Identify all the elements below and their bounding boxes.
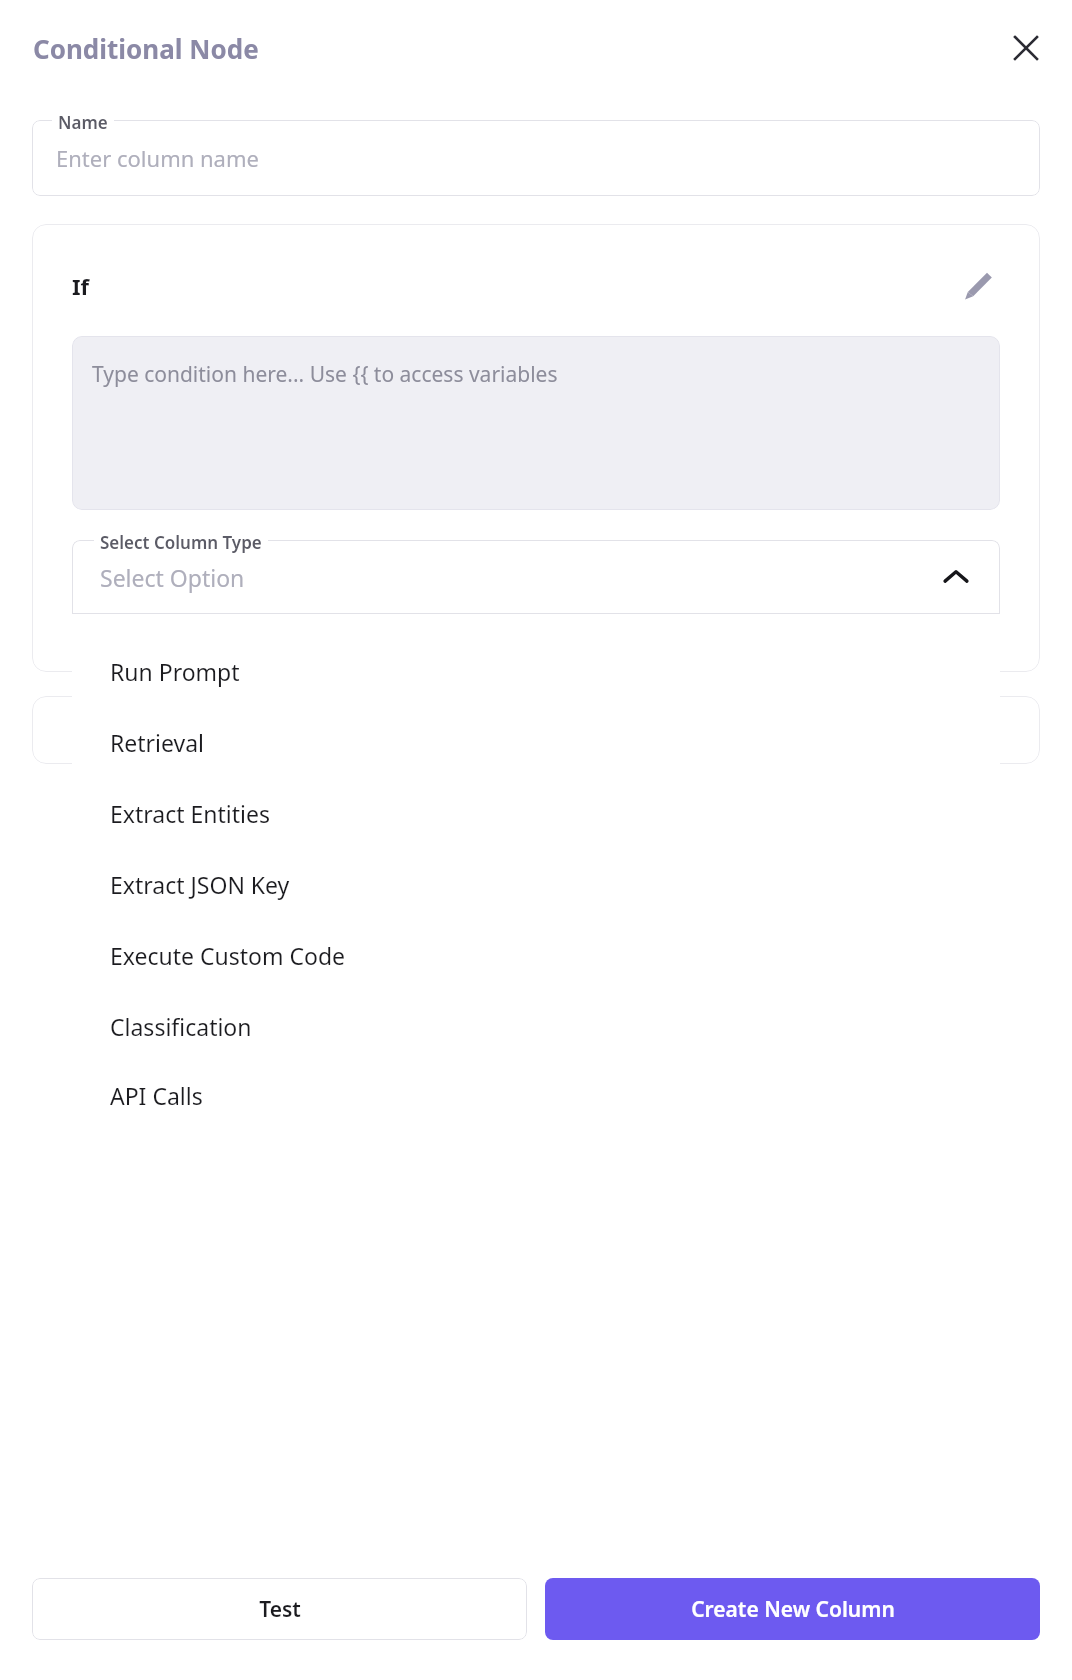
- staticText: Type condition here... Use {{ to access …: [92, 360, 558, 389]
- button[interactable]: Execute Custom Code: [72, 920, 1000, 991]
- staticText: Select Column Type: [100, 531, 262, 554]
- staticText: Name: [58, 111, 108, 134]
- button[interactable]: Type condition here... Use {{ to access …: [72, 336, 1000, 510]
- button[interactable]: Enter column name: [32, 120, 1040, 196]
- button[interactable]: Create New Column: [545, 1578, 1040, 1640]
- staticText: Run Prompt: [110, 656, 240, 687]
- button[interactable]: Classification: [72, 991, 1000, 1062]
- staticText: If: [72, 271, 90, 301]
- staticText: Select Option: [100, 562, 245, 593]
- staticText: API Calls: [110, 1080, 203, 1111]
- staticText: Extract JSON Key: [110, 869, 290, 900]
- staticText: Test: [259, 1595, 301, 1624]
- button[interactable]: Close: [1004, 26, 1048, 70]
- staticText: Retrieval: [110, 727, 205, 758]
- button[interactable]: Extract Entities: [72, 778, 1000, 849]
- button[interactable]: API Calls: [72, 1062, 1000, 1129]
- button[interactable]: Extract JSON Key: [72, 849, 1000, 920]
- staticText: Create New Column: [691, 1595, 895, 1624]
- staticText: Classification: [110, 1011, 252, 1042]
- button[interactable]: Select Column Type: [72, 540, 1000, 614]
- button[interactable]: Test: [32, 1578, 527, 1640]
- button[interactable]: Run Prompt: [72, 636, 1000, 707]
- staticText: Extract Entities: [110, 798, 270, 829]
- staticText: Enter column name: [56, 143, 259, 173]
- button[interactable]: Retrieval: [72, 707, 1000, 778]
- staticText: Execute Custom Code: [110, 940, 346, 971]
- staticText: Conditional Node: [33, 31, 259, 66]
- button[interactable]: Edit: [956, 264, 1000, 308]
